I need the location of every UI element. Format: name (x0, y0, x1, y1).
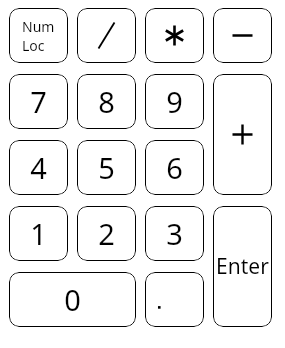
button[interactable]: 7 (9, 74, 68, 129)
staticText: 6 (166, 148, 183, 187)
staticText: 9 (166, 82, 183, 121)
staticText: 2 (98, 214, 115, 253)
button[interactable]: Multiply (145, 8, 204, 63)
button[interactable]: 2 (77, 206, 136, 261)
button[interactable]: 3 (145, 206, 204, 261)
button[interactable]: 6 (145, 140, 204, 195)
staticText: 0 (64, 280, 81, 319)
staticText: Num Loc (22, 17, 55, 55)
staticText: 8 (98, 82, 115, 121)
button[interactable]: Enter (213, 206, 272, 327)
staticText: 1 (30, 214, 47, 253)
staticText: Enter (216, 252, 269, 281)
button[interactable]: 5 (77, 140, 136, 195)
button[interactable]: Decimal point (145, 272, 204, 327)
button[interactable]: Minus (213, 8, 272, 63)
button[interactable]: 9 (145, 74, 204, 129)
button[interactable]: Divide (77, 8, 136, 63)
button[interactable]: 8 (77, 74, 136, 129)
button[interactable]: Num Lock (9, 8, 68, 63)
staticText: 5 (98, 148, 115, 187)
button[interactable]: 1 (9, 206, 68, 261)
button[interactable]: 0 (9, 272, 136, 327)
button[interactable]: 4 (9, 140, 68, 195)
staticText: 7 (30, 82, 47, 121)
button[interactable]: Plus (213, 74, 272, 195)
staticText: 3 (166, 214, 183, 253)
staticText: 4 (30, 148, 47, 187)
